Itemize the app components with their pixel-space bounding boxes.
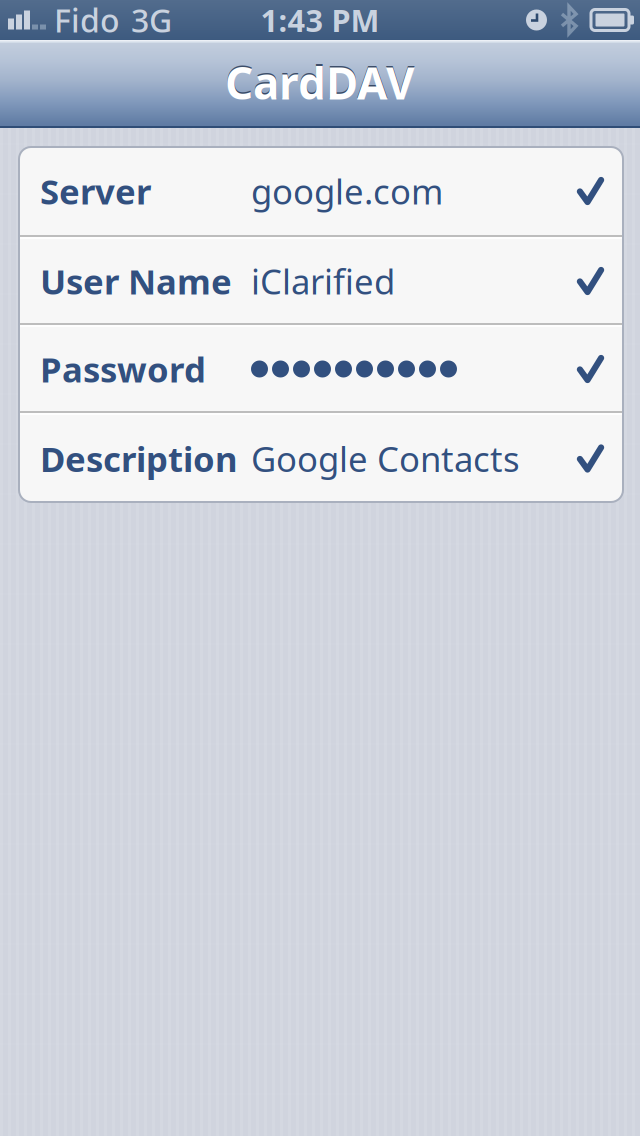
button[interactable]: Description	[19, 415, 623, 502]
staticText: google.com	[251, 168, 443, 214]
button[interactable]: Password	[19, 327, 623, 411]
staticText: 3G	[131, 0, 172, 41]
staticText: Description	[40, 435, 238, 481]
staticText: Fido	[54, 0, 120, 41]
staticText: iClarified	[251, 258, 395, 304]
staticText: Password	[40, 346, 206, 392]
button[interactable]: Server	[19, 147, 623, 235]
staticText: User Name	[40, 258, 232, 304]
staticText: CardDAV	[225, 53, 415, 112]
staticText: Google Contacts	[251, 435, 520, 481]
staticText: Server	[40, 168, 151, 214]
button[interactable]: User Name	[19, 239, 623, 323]
staticText: 1:43 PM	[260, 0, 379, 40]
staticText: CardDAV	[225, 52, 415, 110]
